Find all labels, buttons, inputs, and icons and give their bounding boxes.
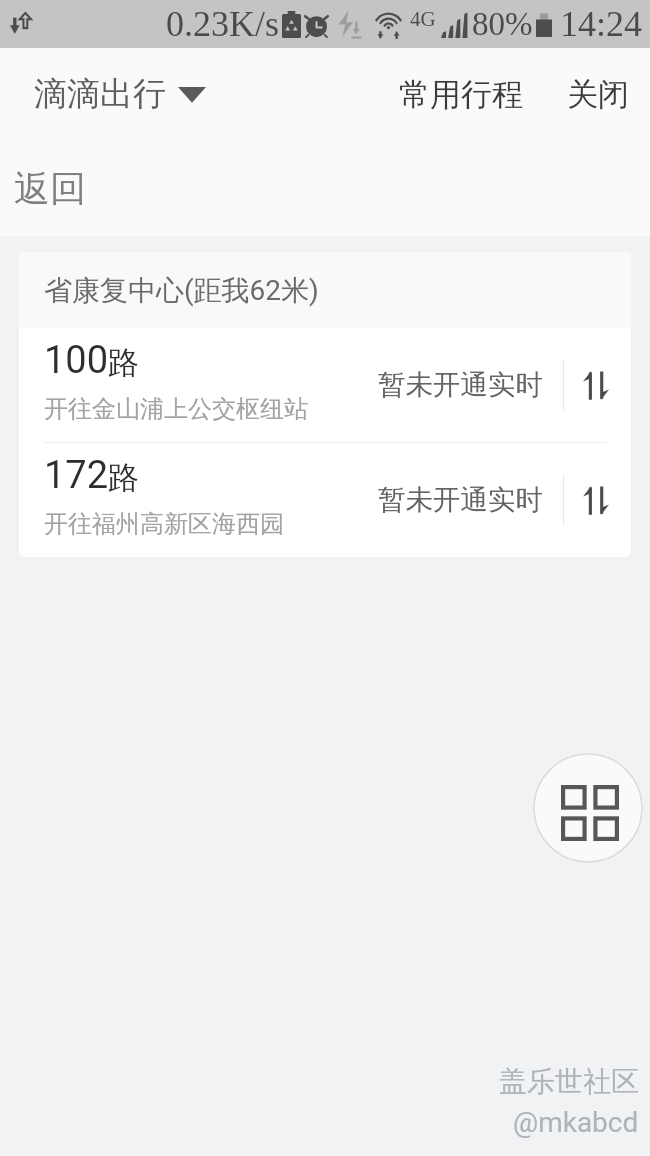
button[interactable]: 100路 bbox=[19, 328, 631, 442]
staticText: 暂未开通实时 bbox=[378, 483, 543, 518]
button[interactable]: 关闭 bbox=[559, 67, 637, 122]
button[interactable]: 返回 bbox=[8, 160, 92, 217]
staticText: 常用行程 bbox=[399, 75, 523, 114]
staticText: 0.23K/s bbox=[166, 4, 280, 44]
button[interactable]: 更多应用 bbox=[533, 753, 643, 863]
staticText: 滴滴出行 bbox=[34, 73, 166, 115]
staticText: @mkabcd bbox=[513, 1106, 639, 1139]
staticText: 80% bbox=[472, 6, 533, 43]
staticText: 关闭 bbox=[567, 75, 629, 114]
staticText: 100路 bbox=[44, 338, 140, 383]
button[interactable]: 172路 bbox=[19, 443, 631, 557]
staticText: 返回 bbox=[14, 166, 86, 211]
staticText: 省康复中心(距我62米) bbox=[44, 273, 319, 308]
staticText: 开往福州高新区海西园 bbox=[44, 509, 284, 539]
button[interactable]: 切换方向 bbox=[569, 359, 621, 411]
staticText: 开往金山浦上公交枢纽站 bbox=[44, 394, 308, 424]
staticText: 盖乐世社区 bbox=[499, 1064, 639, 1099]
staticText: 14:24 bbox=[560, 4, 643, 44]
staticText: 暂未开通实时 bbox=[378, 368, 543, 403]
button[interactable]: 滴滴出行 bbox=[28, 67, 212, 121]
button[interactable]: 切换方向 bbox=[569, 474, 621, 526]
button[interactable]: 常用行程 bbox=[391, 67, 531, 122]
staticText: 172路 bbox=[44, 453, 140, 498]
staticText: 4G bbox=[410, 7, 436, 30]
